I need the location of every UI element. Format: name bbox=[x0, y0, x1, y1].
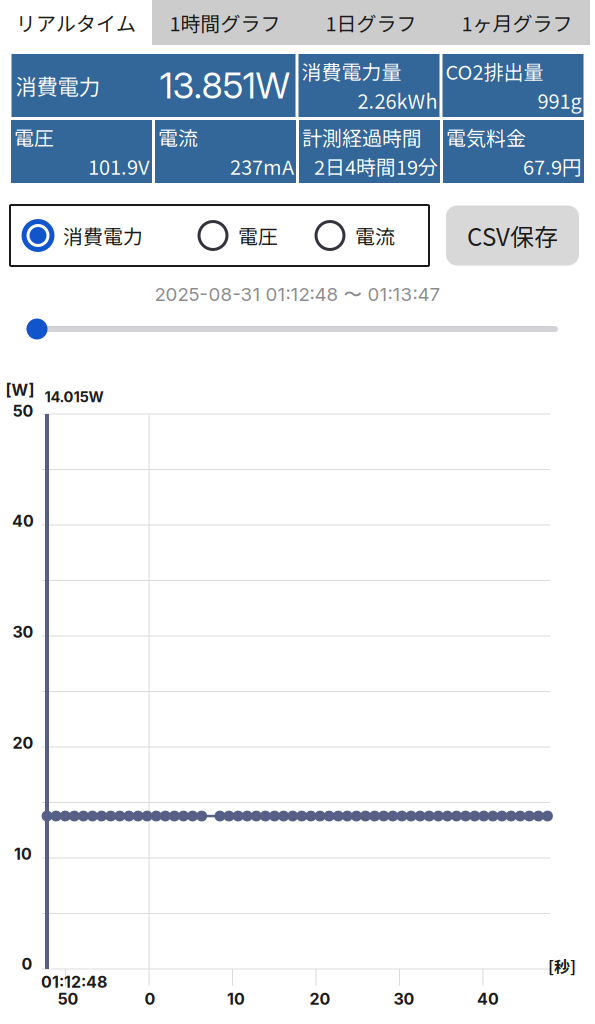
staticText: 0 bbox=[21, 954, 32, 974]
staticText: [W] bbox=[5, 380, 34, 400]
staticText: 1時間グラフ bbox=[169, 8, 280, 37]
staticText: 20 bbox=[309, 989, 330, 1009]
button[interactable]: 消費電力 bbox=[22, 219, 143, 251]
staticText: 40 bbox=[12, 511, 34, 531]
staticText: 237mA bbox=[230, 151, 294, 180]
staticText: 1ヶ月グラフ bbox=[461, 8, 572, 37]
staticText: 50 bbox=[12, 401, 33, 421]
staticText: CSV保存 bbox=[467, 218, 558, 253]
staticText: CO2排出量 bbox=[445, 56, 543, 85]
staticText: [秒] bbox=[548, 954, 576, 978]
staticText: 13.851W bbox=[159, 64, 290, 107]
staticText: 電気料金 bbox=[446, 122, 526, 151]
staticText: 30 bbox=[393, 989, 414, 1009]
staticText: 消費電力量 bbox=[301, 56, 401, 85]
staticText: 991g bbox=[537, 85, 581, 114]
staticText: 101.9V bbox=[88, 151, 150, 180]
staticText: 14.015W bbox=[44, 388, 103, 406]
staticText: 電圧 bbox=[14, 122, 54, 151]
button[interactable]: 電流 bbox=[314, 219, 395, 251]
staticText: 計測経過時間 bbox=[302, 122, 422, 151]
staticText: 10 bbox=[14, 844, 32, 864]
button[interactable]: 1時間グラフ bbox=[152, 0, 298, 45]
staticText: 1日グラフ bbox=[325, 8, 416, 37]
button[interactable]: 1日グラフ bbox=[298, 0, 444, 45]
staticText: 電流 bbox=[158, 122, 198, 151]
button[interactable]: CSV保存 bbox=[446, 205, 579, 265]
staticText: 2日4時間19分 bbox=[314, 151, 438, 180]
staticText: 40 bbox=[477, 989, 499, 1009]
button[interactable]: Time position bbox=[26, 318, 47, 339]
staticText: 20 bbox=[12, 733, 33, 753]
button[interactable]: 1ヶ月グラフ bbox=[444, 0, 590, 45]
staticText: 01:12:48 bbox=[41, 972, 107, 992]
staticText: 67.9円 bbox=[523, 151, 582, 180]
staticText: リアルタイム bbox=[16, 8, 136, 37]
staticText: 50 bbox=[57, 989, 78, 1009]
staticText: 30 bbox=[12, 622, 33, 642]
staticText: 2025-08-31 01:12:48 〜 01:13:47 bbox=[154, 283, 440, 307]
staticText: 10 bbox=[227, 989, 245, 1009]
staticText: 0 bbox=[144, 989, 155, 1009]
staticText: 2.26kWh bbox=[357, 85, 437, 114]
button[interactable]: 電圧 bbox=[197, 219, 278, 251]
staticText: 電流 bbox=[355, 221, 395, 250]
staticText: 消費電力 bbox=[15, 70, 99, 101]
button[interactable]: リアルタイム bbox=[0, 0, 152, 45]
staticText: 電圧 bbox=[238, 221, 278, 250]
staticText: 消費電力 bbox=[63, 221, 143, 250]
